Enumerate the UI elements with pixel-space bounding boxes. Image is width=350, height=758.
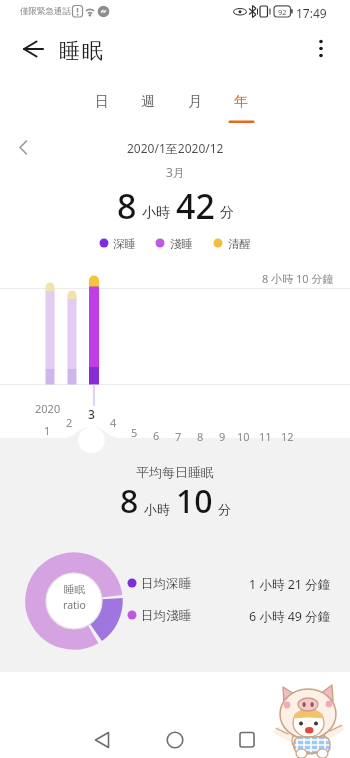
staticText: 清醒: [228, 237, 251, 251]
staticText: 日均淺睡: [141, 608, 191, 624]
staticText: 7: [175, 429, 182, 444]
staticText: 平均每日睡眠: [136, 464, 214, 480]
staticText: 淺睡: [170, 237, 193, 251]
staticText: 1 小時 21 分鐘: [249, 576, 331, 593]
button[interactable]: 週: [128, 86, 168, 118]
staticText: 分: [218, 501, 231, 517]
staticText: 10: [176, 479, 213, 523]
staticText: 深睡: [113, 237, 136, 251]
staticText: 年: [234, 93, 248, 111]
button[interactable]: [8, 134, 38, 162]
button[interactable]: [153, 718, 197, 758]
staticText: 僅限緊急通話: [20, 6, 71, 17]
staticText: 1: [44, 423, 51, 438]
button[interactable]: [305, 33, 337, 65]
staticText: 日均深睡: [141, 576, 191, 592]
button[interactable]: 月: [175, 86, 215, 118]
staticText: 小時: [144, 501, 170, 517]
staticText: 小時: [142, 204, 170, 222]
button[interactable]: 年: [221, 86, 261, 118]
staticText: 2020/1至2020/12: [127, 140, 224, 156]
staticText: 睡眠: [64, 583, 85, 596]
staticText: 8: [120, 479, 139, 523]
staticText: 11: [259, 429, 272, 444]
button[interactable]: 日: [82, 86, 122, 118]
staticText: 6: [153, 428, 160, 443]
button[interactable]: [225, 718, 269, 758]
staticText: 3月: [166, 164, 185, 180]
staticText: 日: [95, 93, 109, 111]
staticText: ratio: [63, 598, 86, 612]
staticText: 92: [278, 7, 287, 17]
staticText: 8: [197, 429, 204, 444]
button[interactable]: [80, 718, 124, 758]
staticText: 9: [219, 429, 226, 444]
staticText: 8 小時 10 分鐘: [262, 271, 334, 286]
staticText: 17:49: [296, 5, 327, 21]
staticText: 6 小時 49 分鐘: [249, 608, 331, 625]
staticText: 2: [66, 415, 73, 430]
staticText: 4: [110, 415, 117, 430]
staticText: 2020: [35, 401, 61, 416]
staticText: 分: [220, 204, 234, 222]
staticText: 睡眠: [58, 38, 104, 64]
staticText: 5: [131, 425, 138, 440]
staticText: 月: [188, 93, 202, 111]
staticText: 週: [141, 93, 155, 111]
staticText: 3: [88, 406, 95, 422]
staticText: 8: [117, 183, 137, 229]
staticText: 12: [281, 429, 294, 444]
staticText: 42: [176, 183, 215, 229]
button[interactable]: [10, 35, 54, 63]
staticText: 10: [237, 429, 250, 444]
